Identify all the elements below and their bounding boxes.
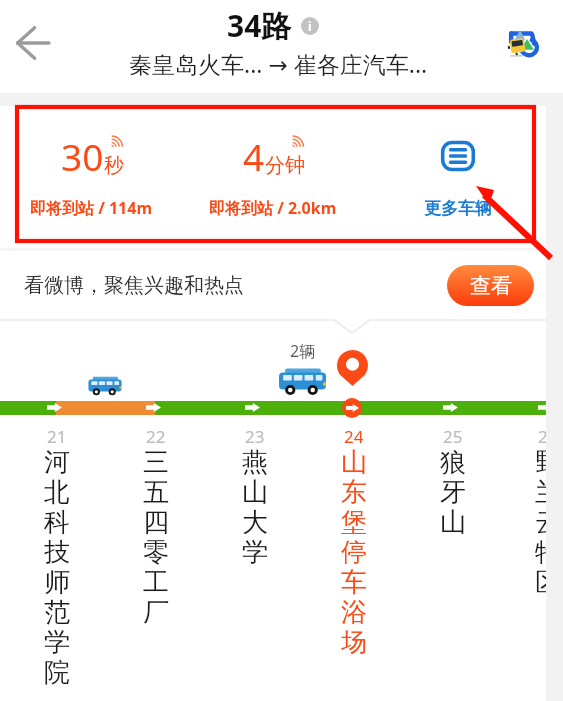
staticText: 23 [245, 425, 265, 448]
button[interactable]: 26 [515, 423, 546, 599]
staticText: 查看 [470, 273, 512, 299]
button[interactable]: 21 [24, 423, 90, 689]
staticText: 三 五 四 零 工 厂 [143, 446, 169, 629]
staticText: 26 [538, 425, 546, 448]
staticText: 燕 山 大 学 [242, 446, 268, 569]
staticText: 30 [61, 131, 104, 181]
staticText: 34路 [227, 5, 292, 46]
staticText: 狼 牙 山 [440, 446, 466, 539]
staticText: 更多车辆 [424, 198, 492, 219]
button[interactable]: 24 [321, 423, 387, 659]
button[interactable]: App logo [500, 21, 544, 65]
staticText: 即将到站 / 2.0km [209, 197, 337, 219]
button[interactable]: 22 [123, 423, 189, 629]
staticText: 24 [344, 425, 364, 448]
button[interactable]: 秦皇岛火车... → 崔各庄汽车... [129, 48, 428, 79]
button[interactable]: Back [1, 11, 65, 75]
button[interactable]: 25 [420, 423, 486, 539]
button[interactable]: 4 [182, 106, 364, 248]
staticText: 看微博，聚焦兴趣和热点 [24, 273, 244, 298]
staticText: 河 北 科 技 师 范 学 院 [44, 446, 70, 689]
staticText: 21 [47, 425, 67, 448]
staticText: 25 [443, 425, 463, 448]
staticText: i [308, 18, 312, 34]
button[interactable]: 34路 [227, 5, 319, 46]
button[interactable]: 23 [222, 423, 288, 569]
button[interactable]: 查看 [447, 265, 534, 306]
staticText: 4 [243, 131, 265, 181]
staticText: 秒 [104, 153, 124, 178]
staticText: 2辆 [290, 340, 316, 362]
button[interactable]: 30 [0, 106, 182, 248]
staticText: 分钟 [265, 153, 305, 178]
staticText: 22 [146, 425, 166, 448]
staticText: 即将到站 / 114m [30, 197, 153, 219]
other: Route info [301, 17, 319, 35]
staticText: 山 东 堡 停 车 浴 场 [341, 446, 367, 659]
staticText: 野 兰 云 特 区 [535, 446, 546, 599]
button[interactable]: 更多车辆 [364, 106, 546, 248]
